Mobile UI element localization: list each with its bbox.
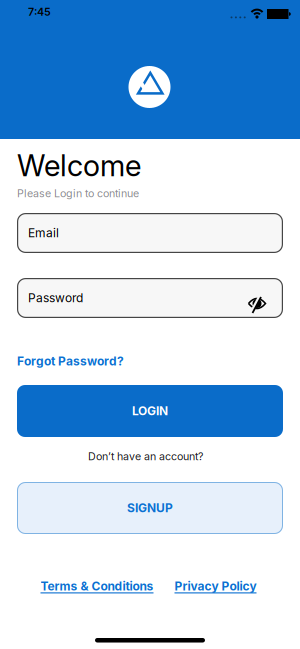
staticText: Please Login to continue <box>17 187 139 200</box>
button[interactable]: Forgot Password? <box>17 354 124 368</box>
staticText: Password <box>28 291 83 305</box>
button[interactable]: LOGIN <box>17 385 283 437</box>
staticText: Don’t have an account? <box>88 450 203 463</box>
staticText: Terms & Conditions <box>40 579 153 593</box>
staticText: 7:45 <box>28 5 51 18</box>
staticText: Email <box>28 226 59 240</box>
button[interactable]: Privacy Policy <box>174 579 256 593</box>
staticText: SIGNUP <box>127 501 173 515</box>
staticText: Forgot Password? <box>17 354 124 368</box>
staticText: Welcome <box>17 148 141 183</box>
button[interactable]: Terms & Conditions <box>40 579 153 593</box>
button[interactable]: Email <box>17 213 283 253</box>
button[interactable]: Password <box>17 278 283 318</box>
staticText: LOGIN <box>132 404 168 418</box>
button[interactable]: SIGNUP <box>17 482 283 534</box>
staticText: Privacy Policy <box>174 579 256 593</box>
